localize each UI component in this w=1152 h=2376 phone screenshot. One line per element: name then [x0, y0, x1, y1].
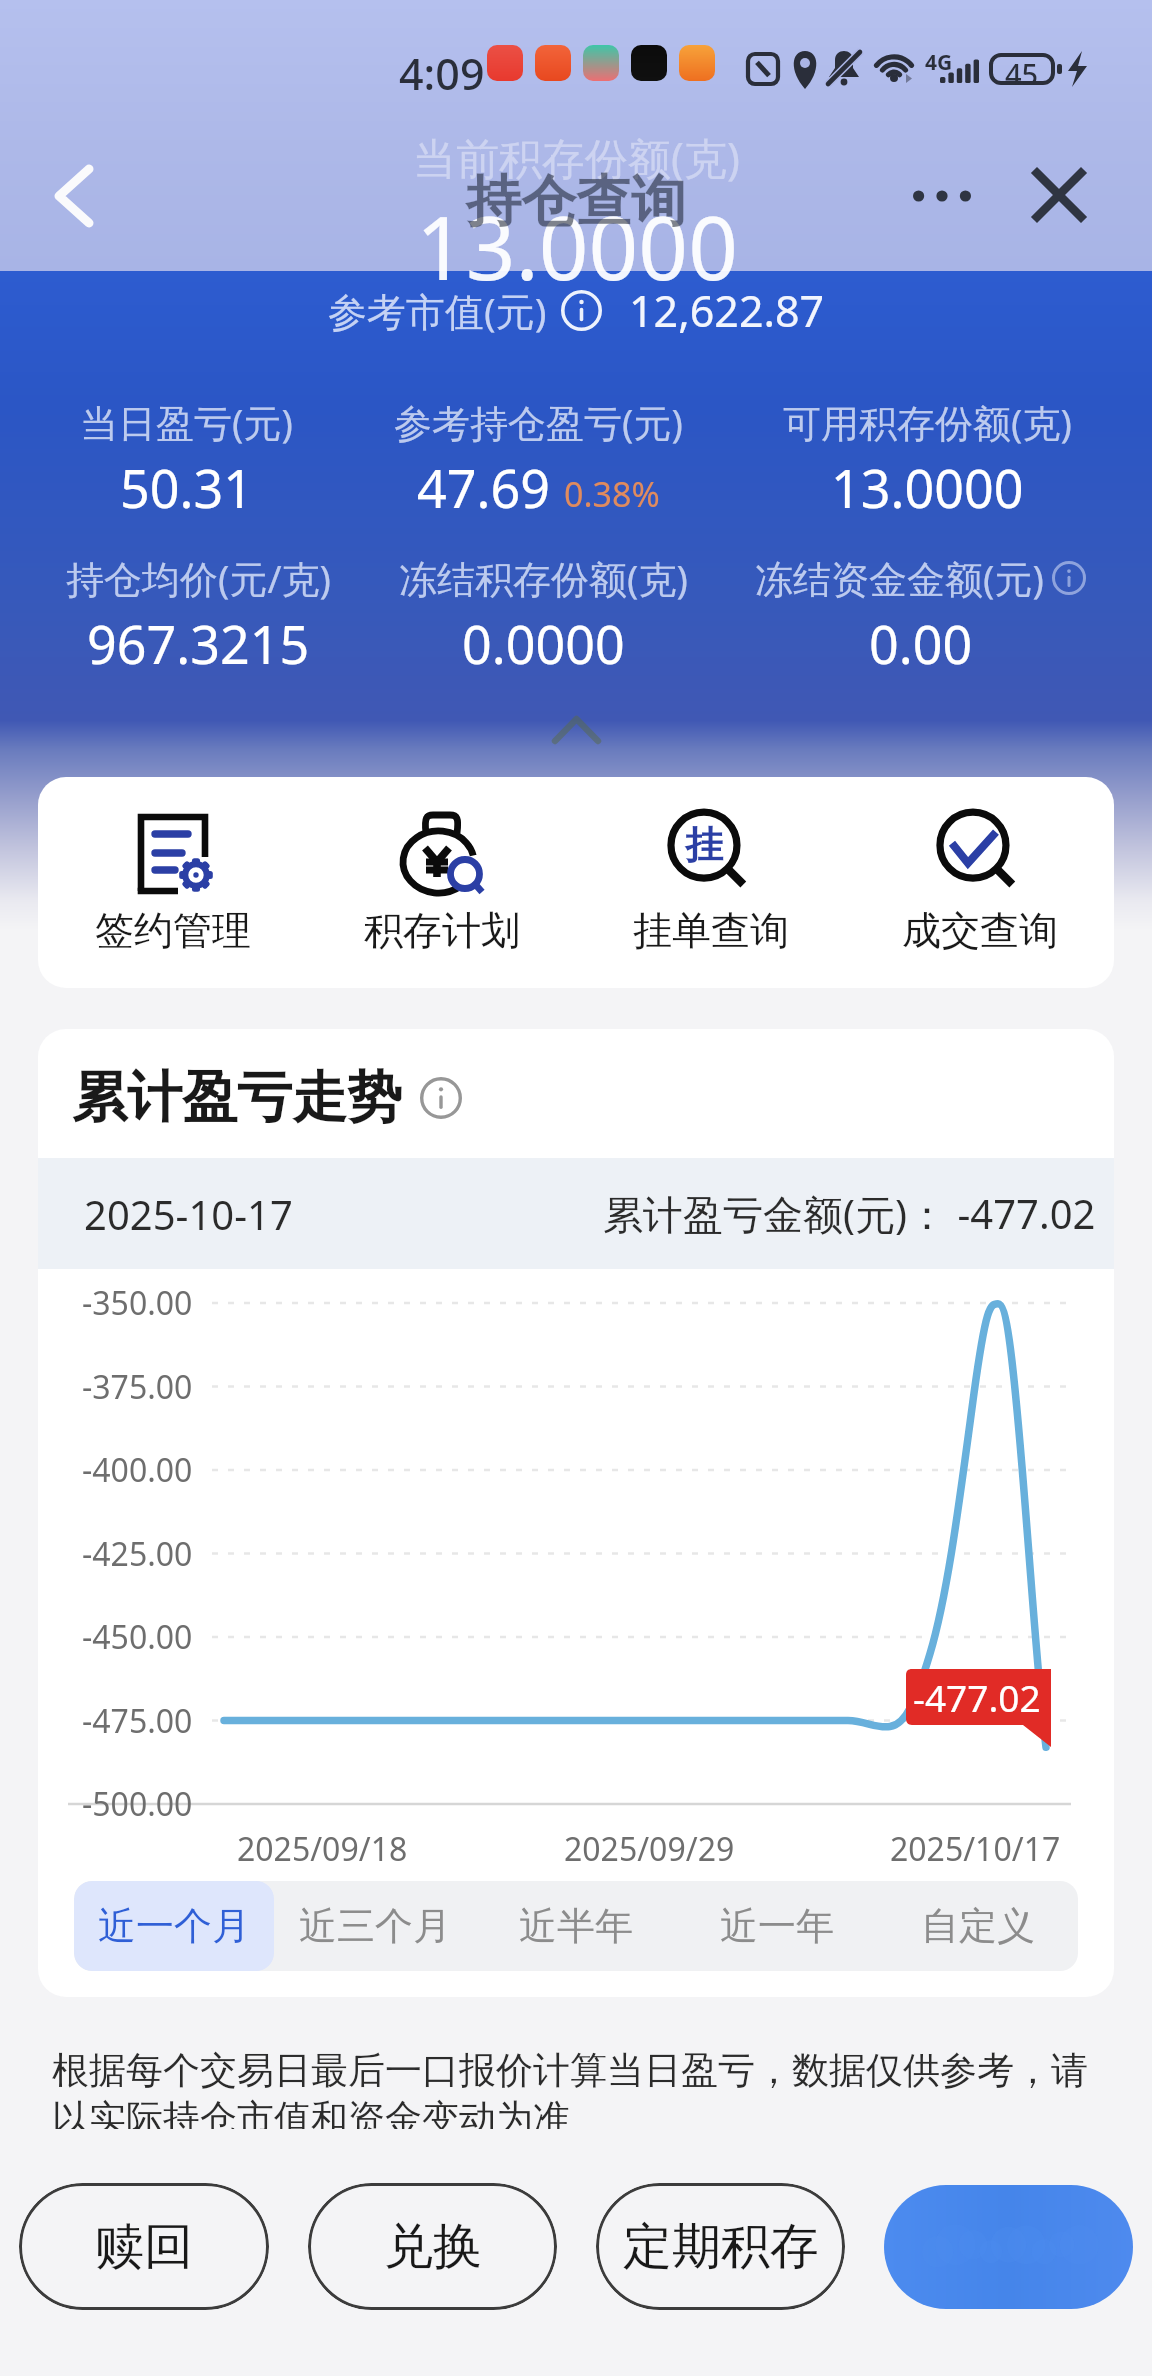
- staticText: -425.00: [82, 1532, 193, 1576]
- staticText: 参考市值(元): [328, 284, 547, 337]
- button[interactable]: 近一年: [676, 1881, 877, 1971]
- staticText: 4:09: [399, 44, 485, 103]
- staticText: 挂单查询: [633, 906, 789, 955]
- staticText: 0.38%: [564, 471, 660, 517]
- button[interactable]: 赎回: [19, 2183, 269, 2310]
- staticText: 定期积存: [623, 2216, 819, 2278]
- staticText: 13.0000: [416, 187, 738, 305]
- staticText: 12,622.87: [629, 281, 825, 340]
- staticText: 0.0000: [462, 608, 625, 679]
- staticText: -475.00: [82, 1699, 193, 1743]
- button[interactable]: 兑换: [308, 2183, 557, 2310]
- button[interactable]: [884, 2185, 1133, 2309]
- staticText: 2025/09/29: [564, 1827, 735, 1871]
- staticText: -500.00: [82, 1782, 193, 1826]
- button[interactable]: 自定义: [877, 1881, 1078, 1971]
- staticText: 50.31: [120, 452, 253, 523]
- staticText: 累计盈亏走势: [72, 1063, 402, 1132]
- staticText: 0.00: [869, 608, 973, 679]
- staticText: 自定义: [921, 1902, 1035, 1950]
- staticText: 积存计划: [364, 906, 520, 955]
- button[interactable]: 成交查询: [845, 777, 1114, 988]
- staticText: -477.02: [913, 1672, 1041, 1722]
- staticText: -400.00: [82, 1448, 193, 1492]
- staticText: 2025/10/17: [890, 1827, 1061, 1871]
- staticText: 根据每个交易日最后一口报价计算当日盈亏，数据仅供参考，请以实际持仓市值和资金变动…: [52, 2047, 1100, 2129]
- staticText: 冻结资金金额(元): [755, 552, 1044, 604]
- staticText: 持仓查询: [466, 167, 686, 236]
- staticText: 13.0000: [831, 452, 1024, 523]
- staticText: 2025/09/18: [237, 1827, 408, 1871]
- staticText: 近一个月: [98, 1902, 250, 1950]
- button[interactable]: More options: [889, 146, 995, 246]
- button[interactable]: 近一个月: [74, 1881, 274, 1971]
- staticText: 成交查询: [902, 906, 1058, 955]
- button[interactable]: 近三个月: [274, 1881, 475, 1971]
- staticText: 4G: [925, 48, 953, 77]
- staticText: 持仓均价(元/克): [66, 552, 331, 604]
- button[interactable]: Collapse: [531, 706, 621, 752]
- button[interactable]: Close: [1009, 145, 1109, 245]
- staticText: 兑换: [384, 2216, 482, 2278]
- staticText: -375.00: [82, 1365, 193, 1409]
- staticText: 47.69: [417, 452, 550, 523]
- staticText: 挂: [685, 821, 723, 869]
- staticText: -350.00: [82, 1281, 193, 1325]
- staticText: -450.00: [82, 1615, 193, 1659]
- button[interactable]: 挂: [576, 777, 845, 988]
- staticText: 2025-10-17: [84, 1187, 293, 1241]
- staticText: 参考持仓盈亏(元): [394, 396, 683, 448]
- button[interactable]: Back: [14, 136, 134, 256]
- staticText: 当前积存份额(克): [413, 128, 740, 187]
- button[interactable]: 近半年: [475, 1881, 676, 1971]
- button[interactable]: 定期积存: [596, 2183, 845, 2310]
- staticText: 签约管理: [95, 906, 251, 955]
- staticText: 967.3215: [87, 608, 310, 679]
- staticText: 赎回: [95, 2216, 193, 2278]
- button[interactable]: 签约管理: [38, 777, 307, 988]
- staticText: 当日盈亏(元): [80, 396, 293, 448]
- staticText: 冻结积存份额(克): [399, 552, 688, 604]
- staticText: 45: [1005, 54, 1039, 93]
- button[interactable]: 积存计划: [307, 777, 576, 988]
- staticText: 可用积存份额(克): [783, 396, 1072, 448]
- staticText: 近三个月: [299, 1902, 451, 1950]
- staticText: 近半年: [519, 1902, 633, 1950]
- staticText: 近一年: [720, 1902, 834, 1950]
- staticText: 累计盈亏金额(元)： -477.02: [603, 1186, 1096, 1241]
